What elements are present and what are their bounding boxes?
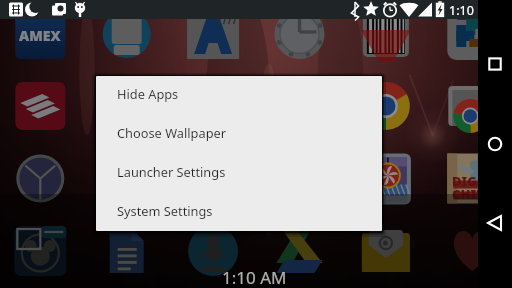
staticText: 1:10	[449, 2, 474, 19]
button[interactable]: Hide Apps	[96, 76, 382, 113]
staticText: System Settings	[117, 202, 213, 219]
staticText: CHIN	[452, 185, 487, 203]
button[interactable]: System Settings	[96, 191, 382, 229]
button[interactable]: Launcher Settings	[96, 152, 382, 191]
button[interactable]: Choose Wallpaper	[96, 113, 382, 152]
button[interactable]: Recents	[483, 52, 507, 76]
staticText: Choose Wallpaper	[117, 124, 227, 141]
staticText: 1:10 AM	[222, 266, 287, 288]
staticText: AMEX	[19, 26, 61, 45]
staticText: Launcher Settings	[117, 163, 226, 180]
button[interactable]: Home	[483, 132, 507, 156]
staticText: Hide Apps	[117, 85, 179, 102]
staticText: DIG T	[452, 172, 488, 190]
button[interactable]: Back	[483, 211, 507, 235]
